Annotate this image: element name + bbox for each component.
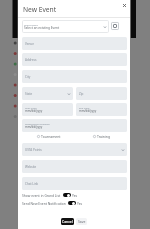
button[interactable]: Close [119,0,130,11]
button[interactable]: Select Event [22,20,109,33]
button[interactable]: State [22,87,73,100]
button[interactable]: Address [22,53,127,66]
button[interactable]: Add new event [111,22,119,30]
button[interactable]: Chat Link [22,177,127,190]
staticText: mm/dd/yyyy [79,109,97,113]
button[interactable]: Start Date [22,103,73,116]
staticText: mm/dd/yyyy [25,109,43,113]
button[interactable]: Save [76,218,87,225]
button[interactable]: Send New Event Notification [22,200,83,206]
button[interactable]: Cancel [61,218,74,225]
staticText: Yes [72,193,78,197]
staticText: Save [78,219,86,224]
staticText: Select Event [24,23,38,26]
button[interactable]: Tournament [37,133,61,139]
button[interactable]: Venue [22,37,127,50]
button[interactable]: Website [22,160,127,173]
staticText: Show event in Grand List [22,193,61,197]
staticText: Chat Link [25,182,39,186]
staticText: Website [25,165,37,169]
staticText: State [25,92,33,96]
staticText: Zip [79,92,84,96]
staticText: mm/dd/yyyy [25,125,43,129]
staticText: USTA Points [25,148,42,152]
staticText: Start Date [25,106,37,109]
staticText: Address [25,58,37,62]
button[interactable]: USTA Points [22,143,127,156]
button[interactable]: End Date [76,103,127,116]
button[interactable]: City [22,70,127,83]
staticText: Select an existing Event [24,26,60,30]
staticText: Yes [77,201,83,205]
staticText: Registration Deadline [25,122,50,125]
staticText: Tournament [41,134,61,139]
staticText: Send New Event Notification [22,201,66,205]
staticText: Cancel [62,219,73,224]
button[interactable]: Show event in Grand List [22,192,78,198]
staticText: City [25,75,31,79]
staticText: Training [97,134,110,139]
button[interactable]: Zip [76,87,127,100]
button[interactable]: Registration Deadline [22,119,127,132]
staticText: Venue [25,42,34,46]
staticText: New Event [23,5,57,14]
button[interactable]: Training [93,133,110,139]
staticText: End Date [79,106,90,109]
